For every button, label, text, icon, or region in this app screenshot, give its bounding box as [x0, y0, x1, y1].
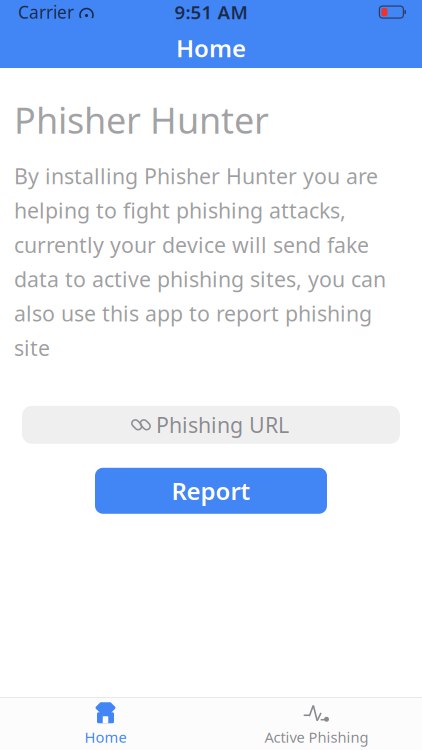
button[interactable]: Home [0, 695, 211, 750]
staticText: Home [84, 727, 126, 747]
staticText: 9:51 AM [174, 0, 247, 24]
button[interactable]: Report [95, 468, 327, 514]
staticText: Carrier [18, 1, 74, 24]
staticText: By installing Phisher Hunter you are hel… [14, 162, 386, 362]
button[interactable]: Phishing URL [22, 406, 400, 444]
staticText: Active Phishing [264, 727, 368, 747]
staticText: Phishing URL [156, 411, 289, 439]
staticText: Report [171, 475, 250, 507]
staticText: Phisher Hunter [14, 96, 269, 144]
staticText: Home [176, 32, 246, 64]
button[interactable]: Active Phishing [211, 695, 422, 750]
